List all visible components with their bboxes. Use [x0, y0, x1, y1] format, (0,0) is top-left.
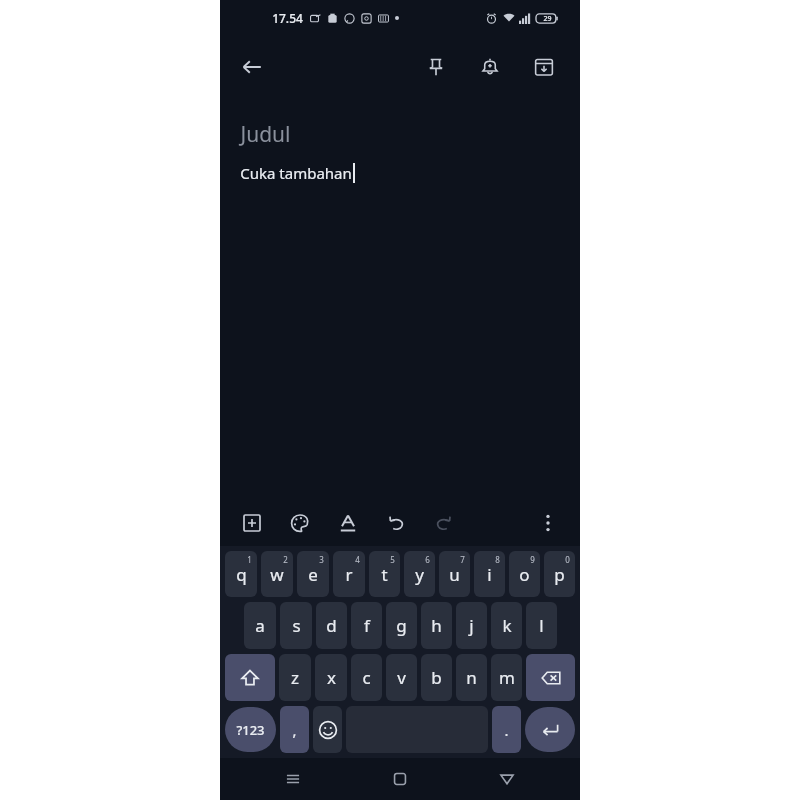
button[interactable]: f — [351, 602, 382, 649]
staticText: Cuka tambahan — [240, 163, 352, 183]
staticText: 17.54 — [272, 10, 303, 26]
button[interactable]: Archive — [524, 47, 564, 87]
button[interactable]: v — [386, 654, 417, 701]
button[interactable]: e — [297, 551, 329, 597]
staticText: l — [539, 614, 544, 637]
staticText: . — [504, 720, 509, 740]
staticText: a — [255, 614, 265, 637]
button[interactable]: Backspace — [526, 654, 575, 701]
button[interactable]: h — [421, 602, 452, 649]
button[interactable]: Add attachment — [232, 503, 272, 543]
button[interactable]: m — [491, 654, 522, 701]
button[interactable]: Formatting — [328, 503, 368, 543]
button[interactable]: Emoji — [313, 706, 342, 753]
button[interactable]: x — [315, 654, 347, 701]
button[interactable]: n — [456, 654, 487, 701]
staticText: 6 — [425, 554, 430, 565]
button[interactable]: d — [316, 602, 347, 649]
button[interactable]: Period — [492, 706, 521, 753]
staticText: 2 — [283, 554, 288, 565]
button[interactable]: Pin note — [416, 47, 456, 87]
staticText: 29 — [543, 14, 552, 24]
staticText: c — [362, 666, 371, 689]
button[interactable]: o — [509, 551, 540, 597]
staticText: z — [291, 666, 299, 689]
staticText: , — [292, 720, 297, 740]
staticText: g — [396, 614, 407, 637]
button[interactable]: Undo — [376, 503, 416, 543]
button[interactable]: i — [474, 551, 505, 597]
staticText: n — [466, 666, 477, 689]
button[interactable]: Enter — [525, 707, 575, 752]
button[interactable]: w — [261, 551, 293, 597]
staticText: 4 — [355, 554, 360, 565]
staticText: x — [327, 666, 336, 689]
staticText: ?123 — [236, 721, 265, 739]
button[interactable]: More options — [528, 503, 568, 543]
button[interactable]: s — [280, 602, 312, 649]
staticText: s — [292, 614, 301, 637]
staticText: r — [345, 563, 353, 586]
staticText: b — [431, 666, 442, 689]
staticText: 0 — [565, 554, 570, 565]
button[interactable]: Change colour — [280, 503, 320, 543]
button[interactable]: r — [333, 551, 365, 597]
button[interactable]: j — [456, 602, 487, 649]
button[interactable]: Back — [490, 762, 524, 796]
staticText: w — [270, 563, 284, 586]
button[interactable]: Back — [232, 47, 272, 87]
button[interactable]: u — [439, 551, 470, 597]
staticText: p — [554, 563, 565, 586]
staticText: 1 — [247, 554, 252, 565]
staticText: h — [431, 614, 442, 637]
staticText: 5 — [390, 554, 395, 565]
button[interactable]: Judul — [240, 120, 560, 149]
button[interactable]: c — [351, 654, 382, 701]
staticText: i — [487, 563, 492, 586]
button[interactable]: y — [404, 551, 435, 597]
staticText: k — [502, 614, 512, 637]
button[interactable]: g — [386, 602, 417, 649]
button[interactable]: Home — [383, 762, 417, 796]
button[interactable]: q — [225, 551, 257, 597]
staticText: e — [308, 563, 318, 586]
button[interactable]: b — [421, 654, 452, 701]
button[interactable]: p — [544, 551, 575, 597]
button[interactable]: ?123 — [225, 707, 276, 752]
button[interactable]: t — [369, 551, 400, 597]
staticText: m — [499, 666, 515, 689]
staticText: y — [415, 563, 424, 586]
staticText: f — [364, 614, 370, 637]
button[interactable]: Add reminder — [470, 47, 510, 87]
staticText: v — [397, 666, 406, 689]
button[interactable]: Cuka tambahan — [240, 163, 560, 183]
staticText: o — [519, 563, 530, 586]
staticText: j — [469, 614, 474, 637]
button[interactable]: a — [244, 602, 276, 649]
staticText: Judul — [240, 120, 291, 149]
button[interactable]: Recents — [276, 762, 310, 796]
staticText: t — [381, 563, 388, 586]
staticText: q — [236, 563, 247, 586]
button[interactable]: Shift — [225, 654, 275, 701]
button[interactable]: Redo — [424, 503, 464, 543]
staticText: 9 — [530, 554, 535, 565]
button[interactable]: k — [491, 602, 522, 649]
staticText: d — [326, 614, 337, 637]
staticText: 8 — [495, 554, 500, 565]
button[interactable]: Comma — [280, 706, 309, 753]
button[interactable]: z — [279, 654, 311, 701]
staticText: 7 — [460, 554, 465, 565]
staticText: u — [449, 563, 460, 586]
button[interactable]: l — [526, 602, 557, 649]
staticText: 3 — [319, 554, 324, 565]
